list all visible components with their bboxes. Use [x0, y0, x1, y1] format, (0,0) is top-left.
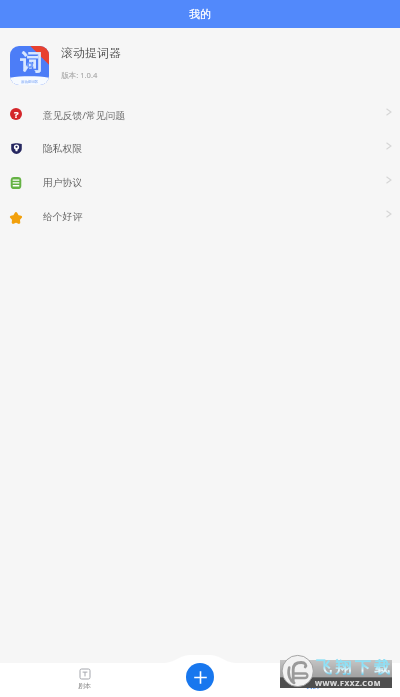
staticText: 滚动提词器	[21, 80, 38, 84]
staticText: 剧本	[78, 682, 91, 690]
button[interactable]: Add	[186, 663, 214, 691]
button[interactable]: ?	[0, 97, 400, 131]
staticText: ?	[14, 108, 19, 120]
staticText: WWW.FXXZ.COM	[315, 678, 382, 688]
staticText: 我的	[189, 7, 211, 21]
staticText: 我的	[306, 682, 319, 690]
button[interactable]: 给个好评	[0, 199, 400, 233]
staticText: 意见反馈/常见问题	[43, 109, 126, 122]
staticText: 版本: 1.0.4	[61, 70, 98, 80]
button[interactable]: 用户协议	[0, 165, 400, 199]
staticText: 飞翔下载	[314, 658, 392, 678]
staticText: 用户协议	[43, 177, 83, 189]
staticText: 滚动提词器	[61, 45, 121, 60]
button[interactable]: 剧本	[78, 669, 91, 690]
staticText: 给个好评	[43, 211, 83, 223]
staticText: 词	[20, 49, 42, 77]
button[interactable]: 我的	[306, 669, 319, 690]
button[interactable]: 隐私权限	[0, 131, 400, 165]
staticText: 隐私权限	[43, 143, 83, 155]
